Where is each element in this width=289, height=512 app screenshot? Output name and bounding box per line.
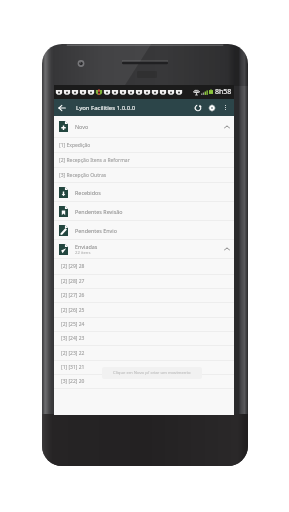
staticText: Novo	[75, 123, 89, 130]
button[interactable]: [2] [25] 24	[54, 318, 234, 331]
button[interactable]: Novo	[54, 116, 234, 137]
staticText: [3] [24] 23	[61, 335, 85, 342]
staticText: [2] Recepção Itens a Reformar	[59, 157, 130, 164]
staticText: [3] [22] 20	[61, 378, 85, 385]
button[interactable]: [3] [24] 23	[54, 332, 234, 345]
staticText: [2] [29] 28	[61, 263, 85, 270]
staticText: 22 itens	[75, 250, 91, 256]
staticText: [3] Recepção Outras	[59, 172, 107, 179]
button[interactable]: [1] Expedição	[54, 138, 234, 152]
staticText: 8h58	[215, 87, 232, 97]
staticText: [2] [27] 26	[61, 292, 85, 299]
staticText: [2] [26] 25	[61, 307, 85, 314]
button[interactable]: [1] [31] 21	[54, 361, 234, 374]
button[interactable]: More options	[219, 99, 231, 116]
button[interactable]: Refresh	[191, 99, 205, 116]
button[interactable]: [2] [23] 22	[54, 346, 234, 360]
button[interactable]: Enviadas	[54, 240, 234, 258]
staticText: Pendentes Envio	[75, 227, 118, 234]
button[interactable]: Pendentes Envio	[54, 221, 234, 239]
button[interactable]: [2] [28] 27	[54, 275, 234, 288]
staticText: [2] [23] 22	[61, 350, 85, 357]
button[interactable]: [3] Recepção Outras	[54, 168, 234, 182]
button[interactable]: [2] [27] 26	[54, 289, 234, 302]
staticText: [2] [28] 27	[61, 278, 85, 285]
button[interactable]: Pendentes Revisão	[54, 202, 234, 220]
button[interactable]: Back	[54, 99, 70, 116]
button[interactable]: Recebidos	[54, 183, 234, 201]
button[interactable]: [2] Recepção Itens a Reformar	[54, 153, 234, 167]
staticText: Clique em Novo p/ criar um movimento	[113, 370, 191, 376]
staticText: Lyon Facilities 1.0.0.0	[76, 104, 136, 112]
button[interactable]: [3] [22] 20	[54, 375, 234, 388]
button[interactable]: Settings	[205, 99, 219, 116]
button[interactable]: [2] [29] 28	[54, 259, 234, 274]
staticText: Pendentes Revisão	[75, 208, 123, 215]
staticText: Recebidos	[75, 189, 101, 196]
button[interactable]: [2] [26] 25	[54, 303, 234, 317]
staticText: [1] [31] 21	[61, 364, 85, 371]
staticText: Enviadas	[75, 243, 98, 250]
staticText: [2] [25] 24	[61, 321, 85, 328]
staticText: [1] Expedição	[59, 142, 91, 149]
